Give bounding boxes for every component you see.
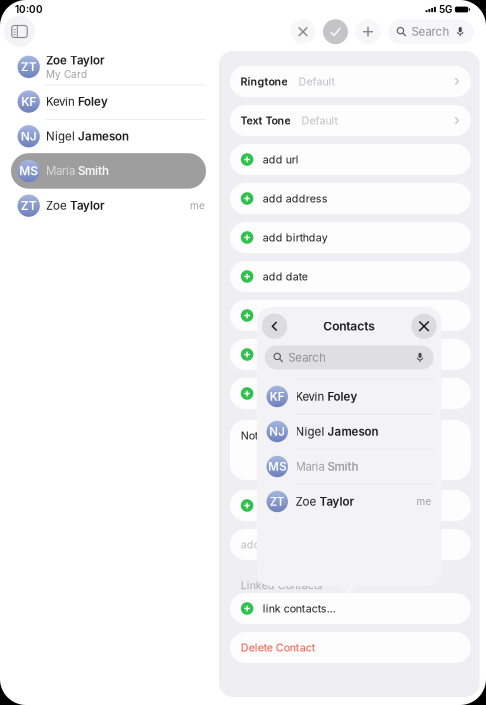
staticText: Text Tone <box>240 114 290 127</box>
staticText: Taylor <box>70 53 105 67</box>
button[interactable]: Cancel <box>290 19 315 44</box>
staticText: Delete Contact <box>241 641 315 654</box>
staticText: Jameson <box>327 425 378 438</box>
staticText: add related name <box>263 309 351 322</box>
button[interactable]: NJ <box>257 414 441 449</box>
staticText: Kevin <box>46 95 78 108</box>
staticText: KF <box>21 94 36 109</box>
staticText: Foley <box>327 390 357 403</box>
button[interactable]: Ringtone <box>230 66 471 97</box>
staticText: add social profile <box>263 348 352 361</box>
button[interactable]: Search <box>388 20 474 44</box>
staticText: link contacts... <box>263 602 336 615</box>
staticText: Contacts <box>323 319 375 333</box>
staticText: Notes <box>241 429 270 442</box>
button[interactable]: KF <box>257 379 441 414</box>
staticText: Linked Contacts <box>241 579 323 592</box>
staticText: Smith <box>78 164 109 178</box>
staticText: ZT <box>270 495 285 508</box>
button[interactable]: Search <box>265 345 434 369</box>
staticText: add birthday <box>263 231 328 244</box>
button[interactable]: ZT <box>257 484 441 519</box>
button[interactable]: add related name <box>230 300 471 331</box>
staticText: Ringtone <box>240 75 287 88</box>
button[interactable]: add url <box>230 144 471 175</box>
button[interactable]: Close <box>411 313 437 339</box>
staticText: KF <box>270 390 285 403</box>
staticText: Jameson <box>78 129 129 143</box>
staticText: Default <box>301 114 337 127</box>
button[interactable]: Delete Contact <box>230 632 471 663</box>
button[interactable]: Text Tone <box>230 105 471 136</box>
button[interactable]: NJ <box>0 119 219 154</box>
staticText: Foley <box>78 95 108 108</box>
staticText: Smith <box>327 460 358 473</box>
button[interactable]: Add <box>355 19 380 44</box>
staticText: MS <box>268 460 286 473</box>
staticText: Default <box>298 75 334 88</box>
staticText: add to favorites <box>241 538 320 551</box>
staticText: me <box>416 495 431 507</box>
staticText: Zoe <box>46 53 70 67</box>
staticText: Taylor <box>70 199 105 213</box>
button[interactable]: add birthday <box>230 222 471 253</box>
staticText: 5G <box>439 3 452 15</box>
staticText: NJ <box>21 129 37 143</box>
button[interactable]: add to favorites <box>230 529 471 560</box>
button[interactable]: Notes <box>230 420 471 480</box>
staticText: me <box>190 200 205 212</box>
staticText: ZT <box>21 198 37 213</box>
button[interactable]: add date <box>230 261 471 292</box>
staticText: add url <box>263 153 299 166</box>
staticText: 10:00 <box>15 3 43 15</box>
staticText: Search <box>288 351 326 364</box>
staticText: Nigel <box>46 129 78 143</box>
staticText: add date <box>263 270 308 283</box>
staticText: Kevin <box>295 390 327 403</box>
staticText: Zoe <box>295 495 319 508</box>
staticText: My Card <box>46 68 87 80</box>
button[interactable]: ZT <box>0 188 219 223</box>
staticText: Nigel <box>295 425 327 438</box>
staticText: Taylor <box>319 495 354 508</box>
staticText: Maria <box>46 164 78 178</box>
staticText: Zoe <box>46 199 70 213</box>
staticText: Search <box>411 25 449 39</box>
staticText: NJ <box>269 425 285 438</box>
button[interactable]: add field <box>230 490 471 521</box>
staticText: add address <box>263 192 328 205</box>
button[interactable]: Toggle Sidebar <box>4 16 35 47</box>
button[interactable]: add social profile <box>230 339 471 370</box>
button[interactable]: MS <box>0 154 219 188</box>
staticText: add instant message <box>263 387 369 400</box>
button[interactable]: KF <box>0 84 219 119</box>
staticText: add field <box>263 499 309 512</box>
button[interactable]: link contacts... <box>230 593 471 624</box>
button[interactable]: Done <box>323 19 348 44</box>
staticText: MS <box>19 164 38 178</box>
button[interactable]: ZT <box>0 49 219 84</box>
button[interactable]: add instant message <box>230 378 471 409</box>
staticText: ZT <box>21 60 37 74</box>
button[interactable]: MS <box>257 449 441 484</box>
staticText: Maria <box>295 460 327 473</box>
button[interactable]: add address <box>230 183 471 214</box>
button[interactable]: Back <box>262 313 287 339</box>
